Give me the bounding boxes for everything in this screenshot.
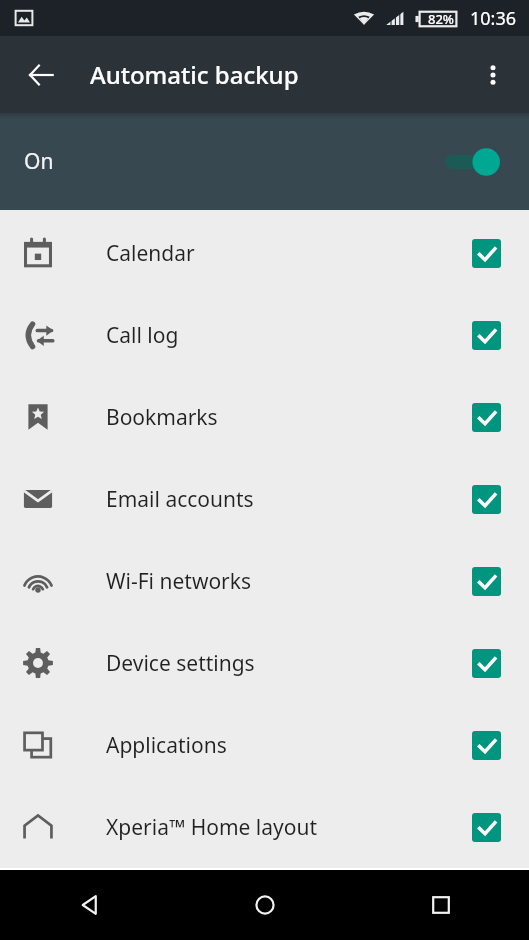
button[interactable]: Call log <box>0 294 529 376</box>
button[interactable]: Xperia™ Home layout <box>0 786 529 868</box>
staticText: 10:36 <box>470 6 517 31</box>
button[interactable]: Email accounts <box>0 458 529 540</box>
button[interactable]: Applications <box>0 704 529 786</box>
staticText: Xperia™ Home layout <box>106 813 472 842</box>
button[interactable]: Device settings <box>0 622 529 704</box>
button[interactable]: Back <box>0 870 177 940</box>
button[interactable]: Calendar <box>0 212 529 294</box>
staticText: On <box>24 147 54 176</box>
button[interactable]: More options <box>467 49 519 101</box>
staticText: Call log <box>106 321 472 350</box>
button[interactable]: Back <box>14 48 68 102</box>
staticText: 82% <box>428 10 454 28</box>
button[interactable]: On <box>0 113 529 210</box>
staticText: Applications <box>106 731 472 760</box>
staticText: Bookmarks <box>106 403 472 432</box>
staticText: Calendar <box>106 239 472 268</box>
staticText: Device settings <box>106 649 472 678</box>
staticText: Email accounts <box>106 485 472 514</box>
button[interactable]: Recent apps <box>353 870 529 940</box>
button[interactable]: Wi-Fi networks <box>0 540 529 622</box>
staticText: Automatic backup <box>90 58 299 91</box>
button[interactable]: Home <box>177 870 353 940</box>
staticText: Wi-Fi networks <box>106 567 472 596</box>
button[interactable]: Bookmarks <box>0 376 529 458</box>
